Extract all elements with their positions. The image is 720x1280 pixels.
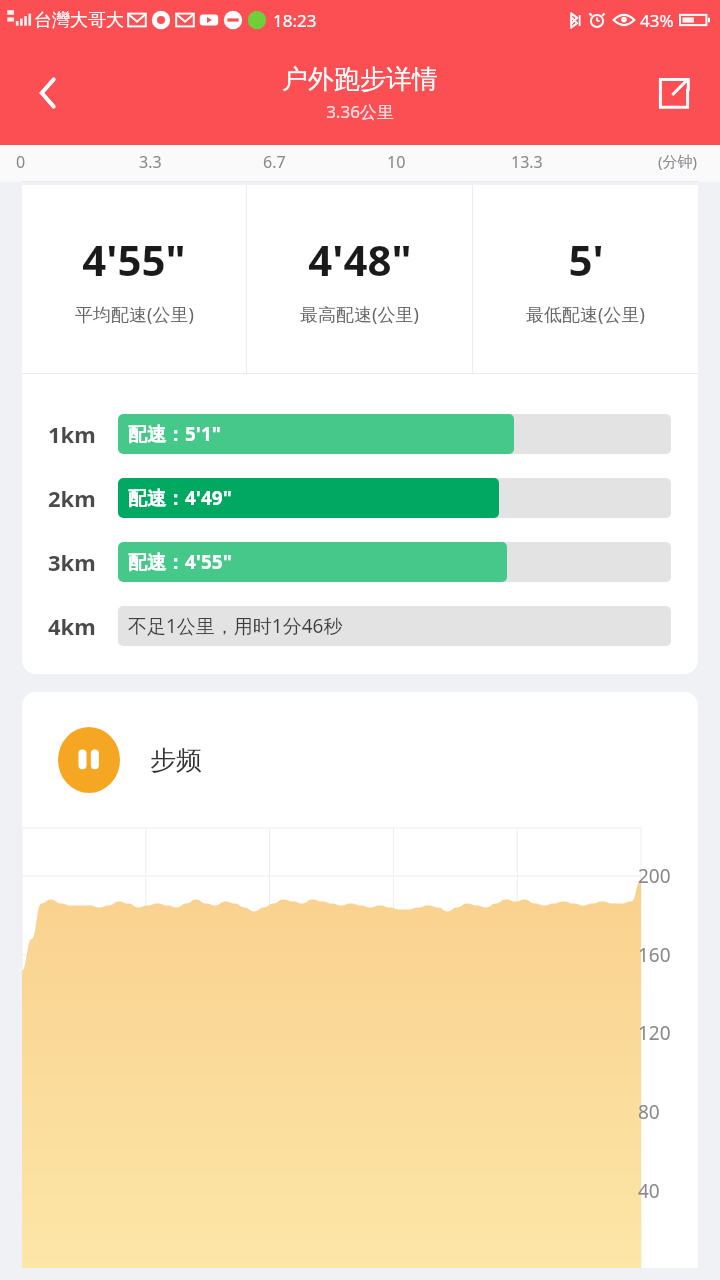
staticText: 配速：4'49" (128, 485, 232, 511)
staticText: 1km (48, 419, 96, 449)
staticText: 最低配速(公里) (526, 302, 645, 327)
staticText: 4'55" (82, 231, 186, 288)
staticText: 4'48" (308, 231, 412, 288)
staticText: 120 (638, 1020, 671, 1046)
staticText: 40 (638, 1178, 660, 1204)
button[interactable]: 3km (48, 542, 671, 582)
staticText: 户外跑步详情 (282, 63, 438, 96)
staticText: 3.3 (139, 151, 162, 173)
button[interactable]: 2km (48, 478, 671, 518)
staticText: 43% (640, 9, 674, 32)
staticText: 0 (16, 151, 26, 173)
staticText: 3km (48, 547, 96, 577)
staticText: 6.7 (263, 151, 286, 173)
staticText: 平均配速(公里) (75, 302, 194, 327)
staticText: 10 (387, 151, 406, 173)
staticText: 4km (48, 611, 96, 641)
staticText: 2km (48, 483, 96, 513)
staticText: 13.3 (511, 151, 543, 173)
staticText: 不足1公里，用时1分46秒 (128, 613, 343, 639)
staticText: 步频 (150, 744, 202, 777)
staticText: (分钟) (658, 151, 698, 171)
button[interactable]: Back (18, 63, 78, 123)
button[interactable]: 4km (48, 606, 671, 646)
staticText: 80 (638, 1099, 660, 1125)
staticText: 18:23 (273, 9, 317, 32)
staticText: 5' (568, 231, 604, 288)
button[interactable]: 1km (48, 414, 671, 454)
staticText: 配速：4'55" (128, 549, 232, 575)
staticText: 160 (638, 942, 671, 968)
staticText: 台灣大哥大 (34, 9, 124, 32)
staticText: 200 (638, 863, 671, 889)
staticText: 最高配速(公里) (300, 302, 419, 327)
staticText: 配速：5'1" (128, 421, 221, 447)
staticText: 3.36公里 (326, 100, 394, 123)
button[interactable]: Share (646, 65, 702, 121)
